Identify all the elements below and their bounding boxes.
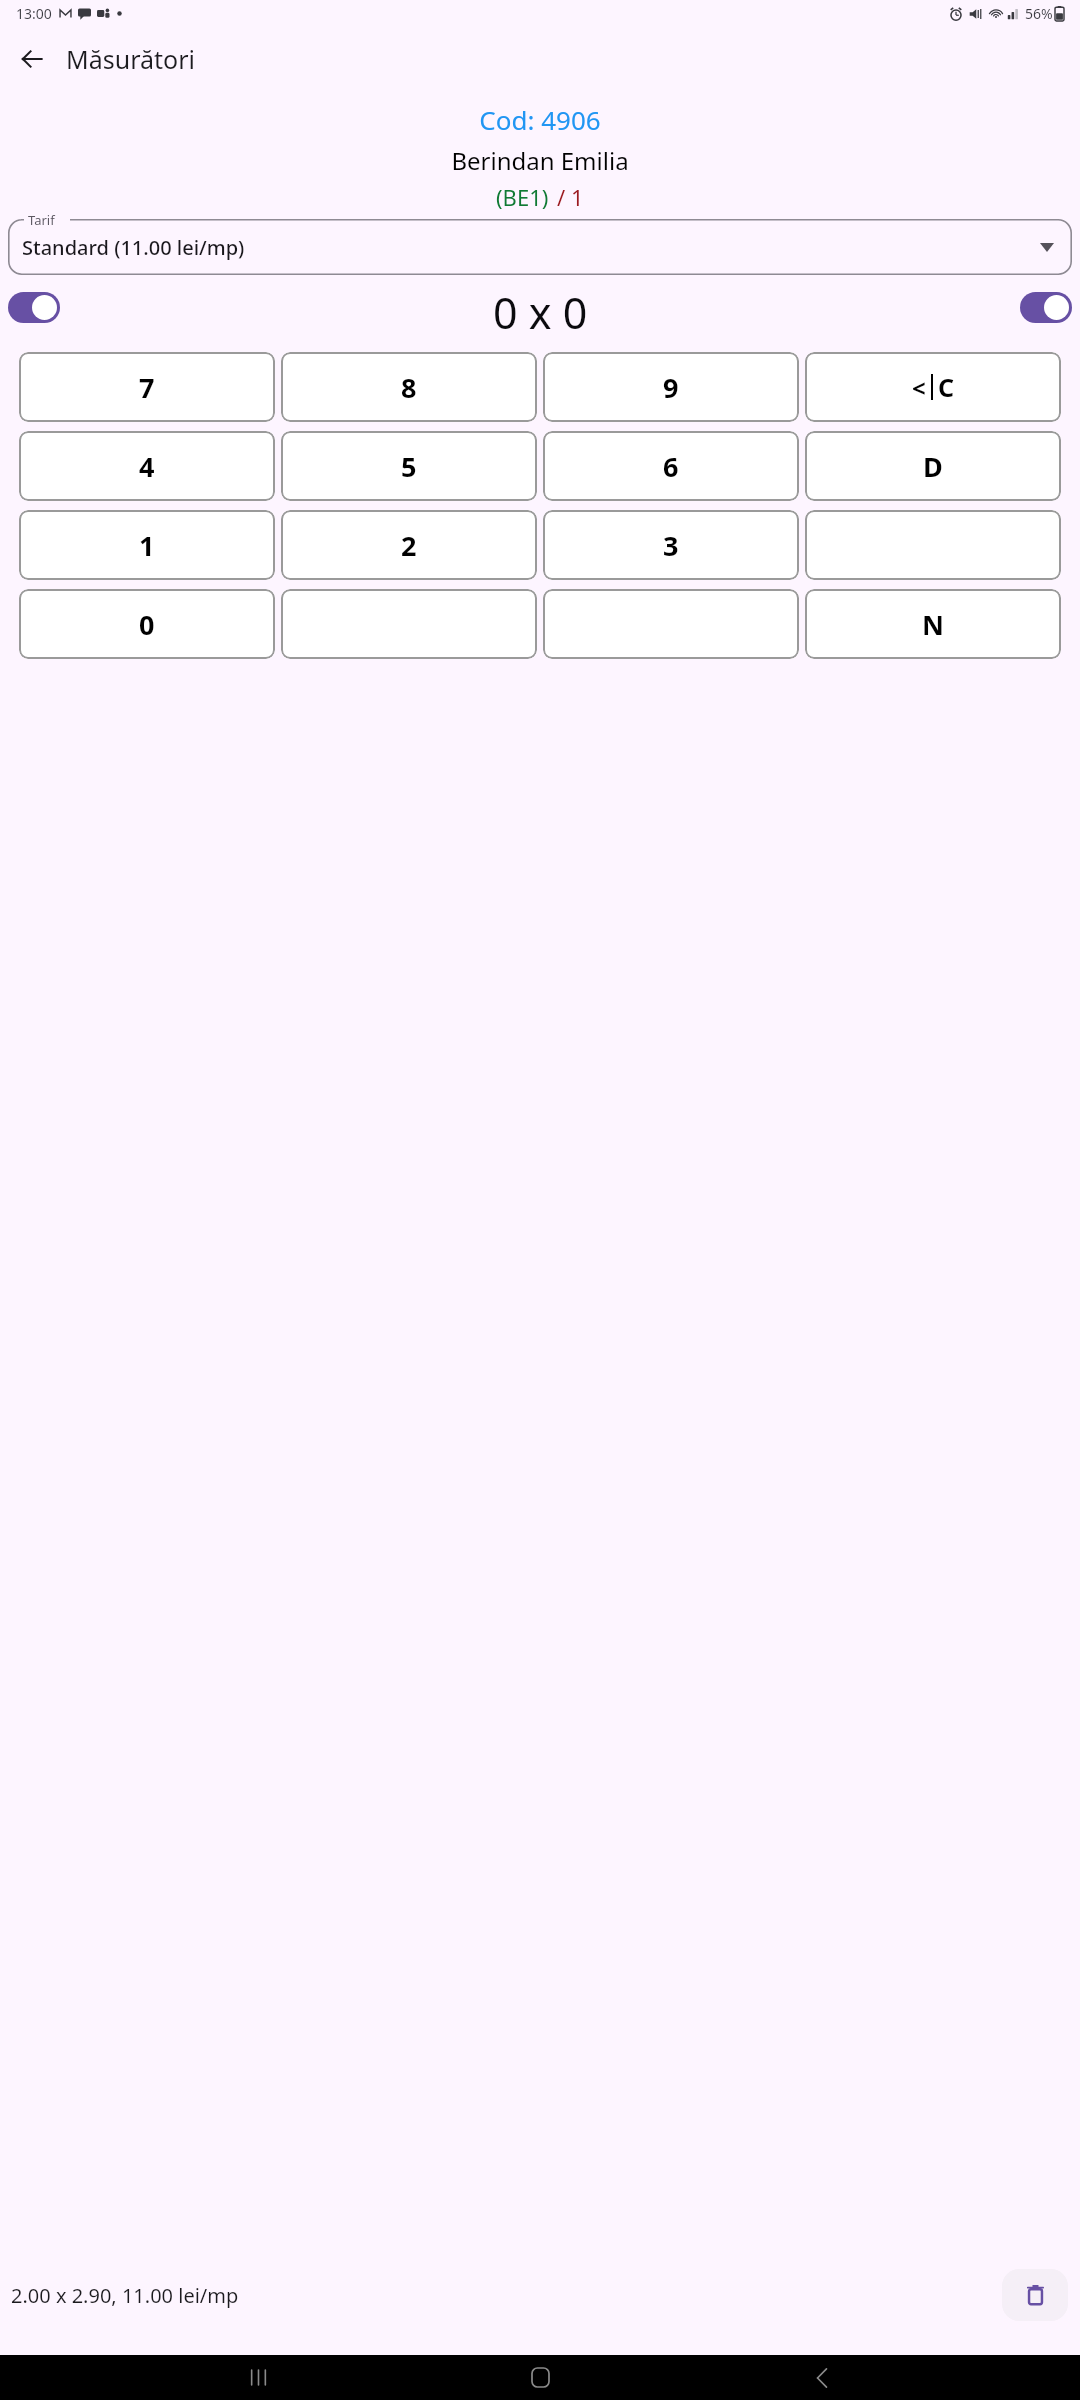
staticText: <	[912, 371, 926, 404]
staticText: Standard (11.00 lei/mp)	[22, 234, 245, 261]
staticText: 3	[663, 527, 679, 564]
staticText: 0 x 0	[493, 283, 588, 331]
button[interactable]: 4	[19, 431, 275, 501]
staticText: 13:00	[16, 4, 52, 23]
staticText: 6	[663, 448, 679, 485]
button[interactable]: Toggle right	[1020, 292, 1072, 323]
button[interactable]: 7	[19, 352, 275, 422]
staticText: Berindan Emilia	[451, 144, 629, 177]
button[interactable]: Recents	[234, 2355, 282, 2400]
button[interactable]: 6	[543, 431, 799, 501]
button[interactable]: Toggle left	[8, 292, 60, 323]
staticText: N	[922, 606, 944, 643]
button[interactable]: 2	[281, 510, 537, 580]
button[interactable]: 0	[19, 589, 275, 659]
button[interactable]: 1	[19, 510, 275, 580]
staticText: Tarif	[28, 211, 55, 229]
staticText: 7	[139, 369, 155, 406]
staticText: / 1	[557, 182, 584, 212]
button[interactable]: N	[805, 589, 1061, 659]
button[interactable]: 3	[543, 510, 799, 580]
button[interactable]: D	[805, 431, 1061, 501]
staticText: (BE1)	[496, 182, 549, 212]
button[interactable]: Standard (11.00 lei/mp)	[8, 219, 1072, 275]
staticText: 0	[139, 606, 155, 643]
staticText: 2.00 x 2.90, 11.00 lei/mp	[11, 2282, 239, 2309]
button[interactable]: Empty key	[543, 589, 799, 659]
button[interactable]: Back	[798, 2355, 846, 2400]
staticText: 4	[139, 448, 155, 485]
staticText: 9	[663, 369, 679, 406]
button[interactable]: 8	[281, 352, 537, 422]
staticText: C	[938, 370, 955, 404]
button[interactable]: Delete	[1002, 2269, 1068, 2321]
button[interactable]: 9	[543, 352, 799, 422]
staticText: D	[923, 448, 943, 485]
button[interactable]: Empty key	[281, 589, 537, 659]
button[interactable]: Empty key	[805, 510, 1061, 580]
button[interactable]: Home	[516, 2355, 564, 2400]
staticText: Cod: 4906	[479, 102, 601, 137]
staticText: 8	[401, 369, 417, 406]
staticText: 1	[139, 527, 155, 564]
button[interactable]: <	[805, 352, 1061, 422]
staticText: 2	[401, 527, 417, 564]
staticText: 5	[401, 448, 417, 485]
button[interactable]: Back	[8, 35, 56, 83]
staticText: Măsurători	[66, 42, 195, 76]
button[interactable]: 5	[281, 431, 537, 501]
staticText: 56%	[1025, 4, 1053, 23]
